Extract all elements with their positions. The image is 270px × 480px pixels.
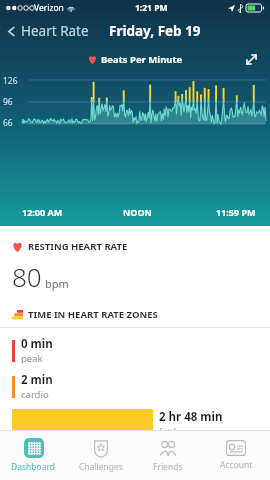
staticText: bpm — [45, 276, 69, 291]
staticText: Heart Rate — [21, 22, 89, 40]
staticText: 11:59 PM — [216, 206, 256, 218]
staticText: 66 — [3, 117, 13, 129]
staticText: Friends — [153, 461, 183, 473]
staticText: TIME IN HEART RATE ZONES — [28, 308, 158, 321]
staticText: 1:21 PM — [135, 2, 168, 14]
button[interactable]: Friends — [134, 431, 202, 480]
staticText: Account — [220, 459, 253, 471]
staticText: Friday, Feb 19 — [109, 22, 201, 40]
staticText: cardio — [21, 388, 49, 401]
staticText: NOON — [123, 206, 152, 218]
button[interactable]: Expand chart — [240, 48, 262, 70]
button[interactable]: Back to Heart Rate — [0, 22, 95, 40]
staticText: 80 — [12, 259, 42, 294]
staticText: RESTING HEART RATE — [28, 240, 128, 253]
staticText: 2 hr 48 min — [159, 409, 223, 425]
staticText: 0 min — [21, 336, 53, 352]
staticText: Dashboard — [11, 461, 56, 473]
staticText: 96 — [3, 96, 13, 108]
button[interactable]: 0 min — [0, 336, 270, 365]
staticText: Beats Per Minute — [101, 53, 183, 66]
staticText: 2 min — [21, 372, 53, 388]
staticText: Verizon — [34, 2, 64, 14]
staticText: Challenges — [79, 461, 123, 473]
button[interactable]: Dashboard — [0, 431, 67, 480]
staticText: 126 — [3, 75, 18, 87]
button[interactable]: Account — [202, 431, 270, 480]
staticText: 12:00 AM — [22, 206, 63, 218]
staticText: peak — [21, 352, 43, 365]
button[interactable]: Challenges — [67, 431, 134, 480]
button[interactable]: RESTING HEART RATE — [0, 240, 270, 294]
staticText: fat burn — [159, 425, 196, 430]
button[interactable]: 2 min — [0, 372, 270, 401]
button[interactable]: 2 hr 48 min — [0, 409, 270, 430]
